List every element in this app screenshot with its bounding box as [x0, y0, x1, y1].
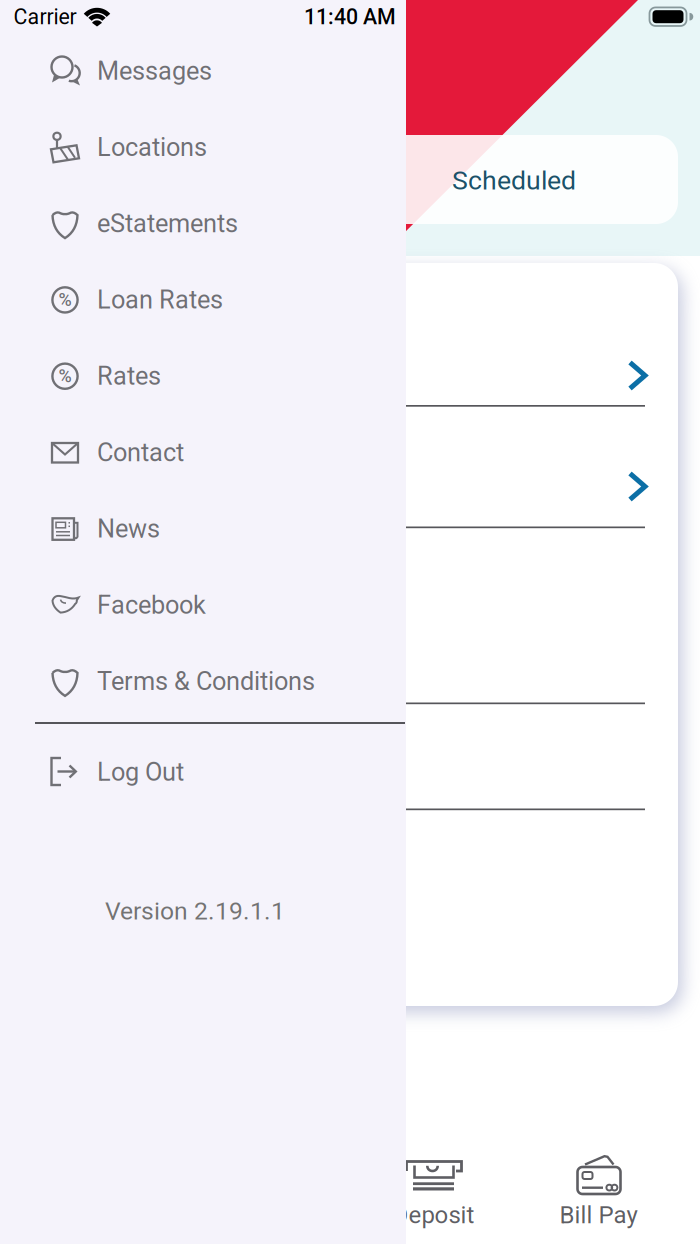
button[interactable]: Transfer tabs	[22, 135, 678, 224]
button[interactable]: Terms & Conditions	[2, 645, 398, 717]
staticText: Log Out	[97, 757, 184, 787]
staticText: Terms & Conditions	[97, 667, 315, 696]
button[interactable]: Scheduled item 2	[22, 407, 678, 525]
staticText: Carrier	[13, 4, 76, 29]
button[interactable]: Contact	[2, 416, 398, 488]
button[interactable]: Log Out	[2, 736, 398, 808]
staticText: Scheduled	[452, 165, 576, 196]
button[interactable]: eStatements	[2, 188, 398, 260]
staticText: 11:40 AM	[304, 4, 396, 29]
staticText: Version 2.19.1.1	[105, 896, 285, 925]
staticText: %	[58, 289, 71, 310]
staticText: Loan Rates	[97, 285, 223, 315]
button[interactable]: News	[2, 493, 398, 565]
button[interactable]: Scheduled item 3	[22, 529, 678, 701]
button[interactable]: Facebook	[2, 569, 398, 641]
button[interactable]: Scheduled	[350, 136, 678, 225]
button[interactable]: %	[2, 264, 398, 336]
button[interactable]: Deposit	[0, 0, 700, 1244]
staticText: Facebook	[97, 590, 206, 620]
staticText: Messages	[97, 56, 212, 86]
button[interactable]: Locations	[2, 111, 398, 183]
button[interactable]: Messages	[2, 35, 398, 107]
staticText: eStatements	[97, 209, 238, 238]
button[interactable]: Scheduled item 1	[22, 264, 678, 404]
staticText: News	[97, 514, 160, 544]
staticText: Bill Pay	[559, 1201, 637, 1229]
staticText: Locations	[97, 132, 207, 162]
button[interactable]: Scheduled item 4	[22, 705, 678, 807]
staticText: Rates	[97, 361, 161, 391]
staticText: Contact	[97, 438, 184, 467]
staticText: Deposit	[392, 1201, 474, 1229]
staticText: %	[58, 366, 71, 387]
button[interactable]: Bill Pay	[0, 0, 700, 1244]
button[interactable]: %	[2, 340, 398, 412]
